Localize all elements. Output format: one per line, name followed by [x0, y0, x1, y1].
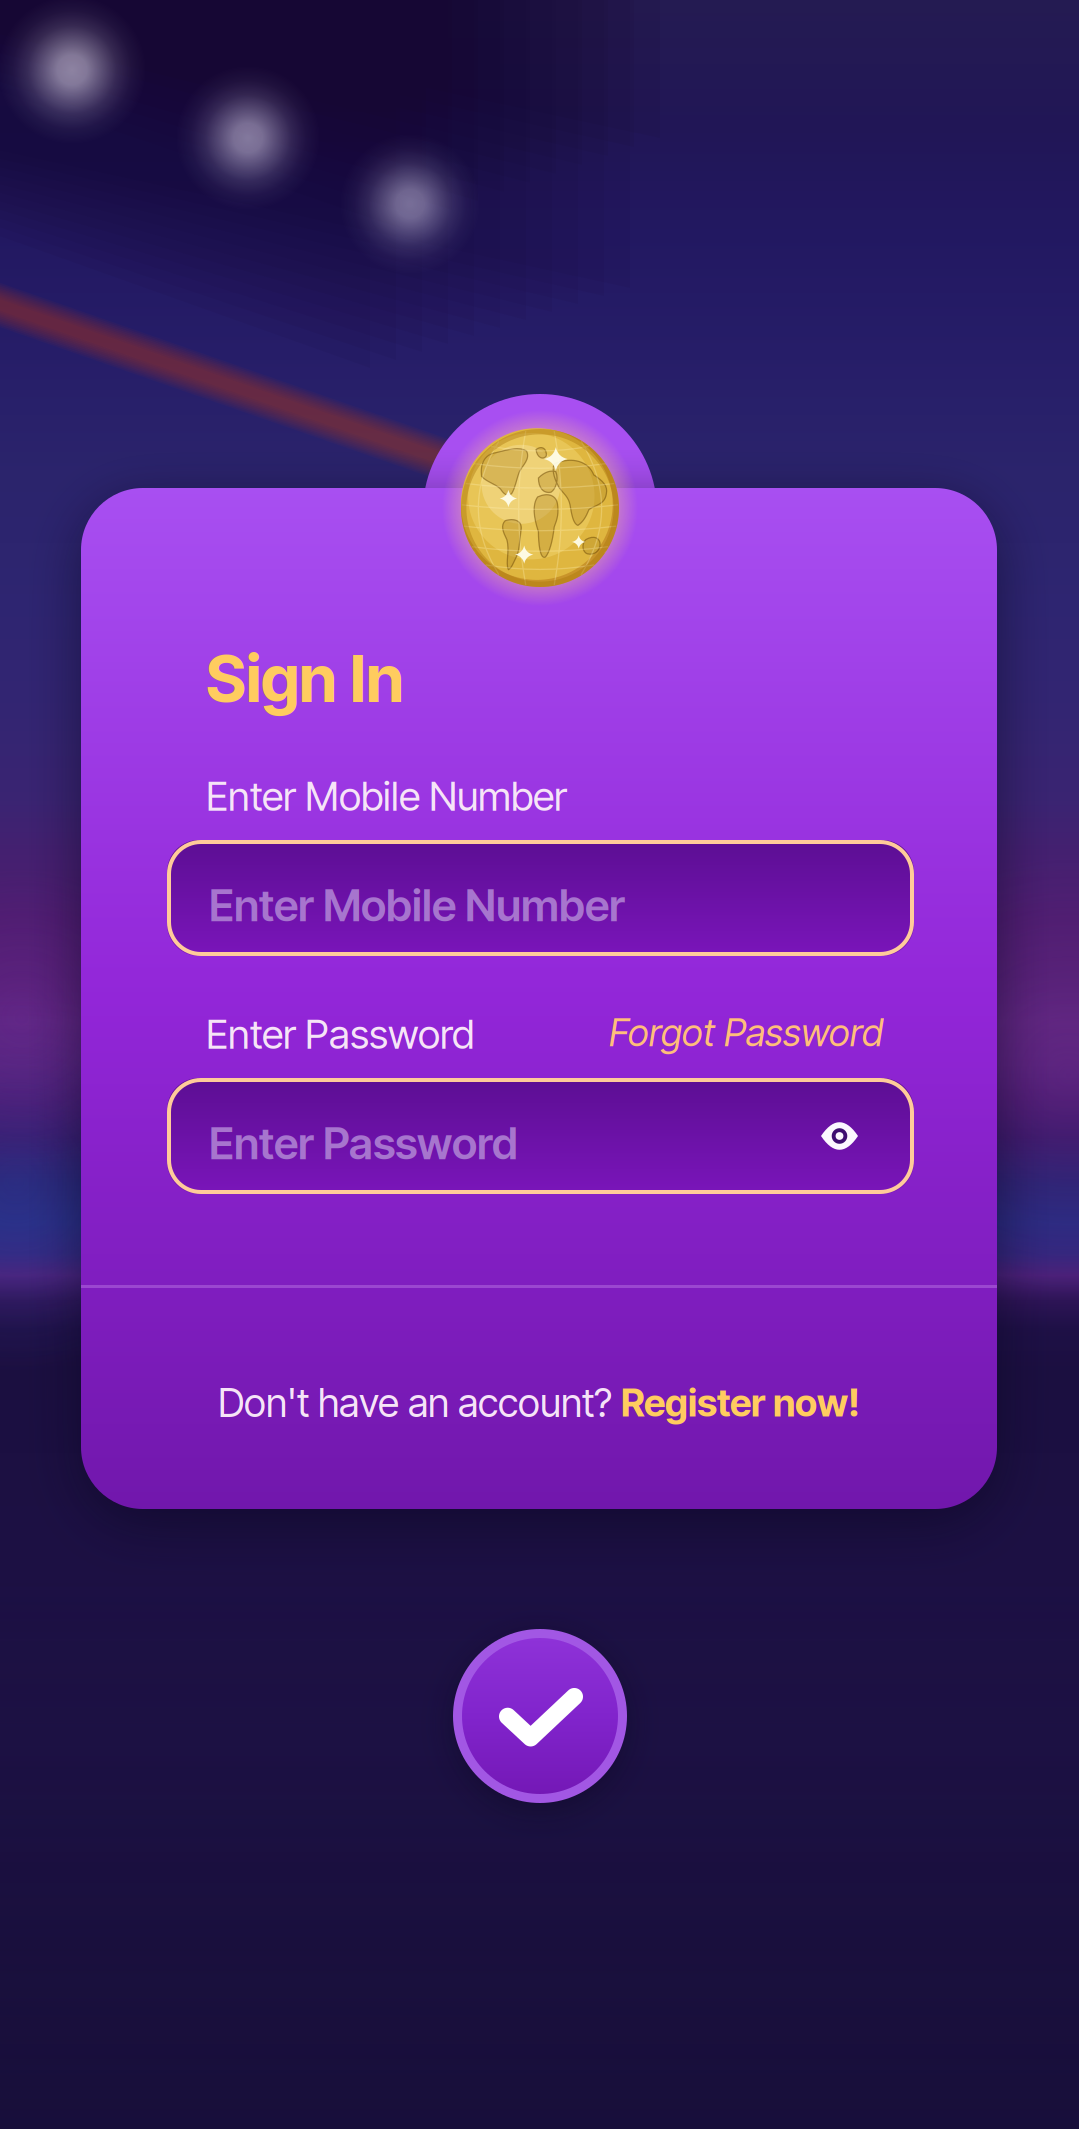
- button[interactable]: Confirm sign in: [453, 1629, 627, 1803]
- staticText: Register now!: [621, 1380, 860, 1426]
- staticText: Enter Mobile Number: [206, 772, 567, 820]
- staticText: Enter Password: [209, 1116, 518, 1170]
- button[interactable]: Show password: [799, 1101, 880, 1171]
- staticText: Forgot Password: [609, 1010, 883, 1055]
- staticText: Enter Password: [206, 1010, 474, 1058]
- button[interactable]: Forgot Password: [609, 1010, 883, 1055]
- staticText: Enter Mobile Number: [209, 878, 625, 932]
- button[interactable]: Register now!: [621, 1380, 860, 1426]
- staticText: Sign In: [206, 640, 404, 717]
- staticText: Don't have an account?: [218, 1379, 621, 1427]
